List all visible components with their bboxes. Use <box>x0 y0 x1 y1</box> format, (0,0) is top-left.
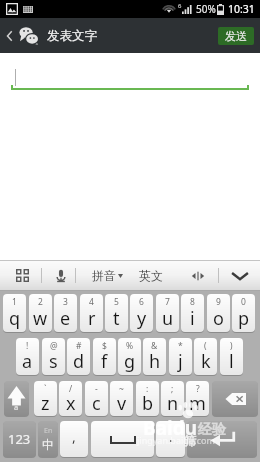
staticText: & <box>151 340 158 352</box>
staticText: z <box>41 391 50 416</box>
button[interactable] <box>187 421 257 457</box>
button[interactable]: 3 <box>54 294 77 332</box>
staticText: q <box>9 306 21 331</box>
button[interactable]: / <box>59 381 82 416</box>
staticText: 发表文字 <box>47 28 97 44</box>
button[interactable]: ( <box>194 338 217 375</box>
button[interactable]: ) <box>220 338 243 375</box>
button[interactable]: 0 <box>232 294 255 332</box>
staticText: t <box>113 306 120 331</box>
button[interactable]: . <box>156 421 185 457</box>
staticText: d <box>73 349 85 374</box>
button[interactable]: 发送 <box>218 27 254 45</box>
button[interactable]: 123 <box>3 421 36 457</box>
button[interactable]: 拼音 <box>86 260 128 291</box>
staticText: i <box>190 306 195 331</box>
staticText: 6 <box>178 2 182 10</box>
button[interactable]: Hide keyboard <box>225 260 255 291</box>
staticText: a <box>22 349 33 374</box>
staticText: e <box>60 306 71 331</box>
staticText: 英文 <box>139 268 163 283</box>
staticText: w <box>33 306 48 331</box>
button[interactable]: : <box>136 381 159 416</box>
staticText: 10:31 <box>228 2 255 16</box>
button[interactable]: @ <box>42 338 65 375</box>
staticText: m <box>189 391 206 416</box>
staticText: x <box>66 391 76 416</box>
staticText: ~ <box>119 383 124 395</box>
button[interactable]: Shift <box>4 381 29 416</box>
staticText: , <box>72 427 76 446</box>
button[interactable]: ; <box>161 381 184 416</box>
staticText: # <box>76 340 82 352</box>
button[interactable]: , <box>60 421 88 457</box>
staticText: k <box>201 349 211 374</box>
button[interactable]: 2 <box>29 294 52 332</box>
staticText: ! <box>26 340 29 352</box>
staticText: 经验 <box>198 421 226 439</box>
staticText: * <box>178 340 183 352</box>
staticText: u <box>162 306 174 331</box>
button[interactable]: Backspace <box>212 381 258 416</box>
button[interactable]: ~ <box>110 381 133 416</box>
button[interactable]: & <box>143 338 166 375</box>
staticText: l <box>229 349 234 374</box>
staticText: n <box>167 391 179 416</box>
staticText: 中 <box>42 437 54 452</box>
staticText: 拼音 <box>92 268 116 283</box>
staticText: 123 <box>8 430 31 448</box>
staticText: / <box>69 383 73 395</box>
staticText: . <box>169 427 173 446</box>
staticText: s <box>49 349 58 374</box>
staticText: h <box>149 349 161 374</box>
staticText: j <box>178 349 183 374</box>
button[interactable]: Resize keyboard <box>185 260 211 291</box>
button[interactable]: 英文 <box>135 260 167 291</box>
staticText: c <box>92 391 101 416</box>
button[interactable]: ! <box>16 338 39 375</box>
staticText: f <box>101 349 108 374</box>
button[interactable]: Back <box>0 18 19 53</box>
button[interactable]: 1 <box>3 294 26 332</box>
staticText: 3 <box>63 296 68 308</box>
staticText: v <box>117 391 127 416</box>
button[interactable]: 4 <box>80 294 103 332</box>
button[interactable]: 9 <box>207 294 230 332</box>
staticText: En <box>44 426 53 436</box>
staticText: p <box>238 306 250 331</box>
staticText: 4 <box>89 296 94 308</box>
button[interactable]: # <box>67 338 90 375</box>
staticText: $ <box>102 340 107 352</box>
button[interactable]: $ <box>93 338 116 375</box>
button[interactable]: ? <box>186 381 209 416</box>
button[interactable] <box>91 421 154 457</box>
staticText: 1 <box>12 296 17 308</box>
button[interactable]: ` <box>34 381 57 416</box>
button[interactable]: 6 <box>130 294 153 332</box>
staticText: 7 <box>165 296 170 308</box>
staticText: 5 <box>114 296 119 308</box>
button[interactable]: * <box>169 338 192 375</box>
staticText: y <box>137 306 147 331</box>
button[interactable]: - <box>85 381 108 416</box>
button[interactable]: % <box>118 338 141 375</box>
staticText: 筛 <box>184 433 196 448</box>
staticText: Baidu <box>143 415 198 441</box>
staticText: b <box>142 391 154 416</box>
button[interactable]: En <box>38 421 58 457</box>
staticText: ` <box>44 383 47 395</box>
staticText: ? <box>196 383 200 395</box>
staticText: 0 <box>241 296 246 308</box>
button[interactable]: 8 <box>181 294 204 332</box>
button[interactable]: Voice input <box>48 260 74 291</box>
button[interactable] <box>0 53 260 95</box>
staticText: @ <box>50 340 58 352</box>
staticText: 6 <box>139 296 144 308</box>
button[interactable]: 5 <box>105 294 128 332</box>
staticText: 9 <box>216 296 221 308</box>
staticText: 发送 <box>225 29 247 43</box>
button[interactable]: 7 <box>156 294 179 332</box>
button[interactable]: Keyboard layouts <box>9 260 35 291</box>
staticText: r <box>88 306 96 331</box>
staticText: jingyan.baidu.com <box>137 434 215 446</box>
